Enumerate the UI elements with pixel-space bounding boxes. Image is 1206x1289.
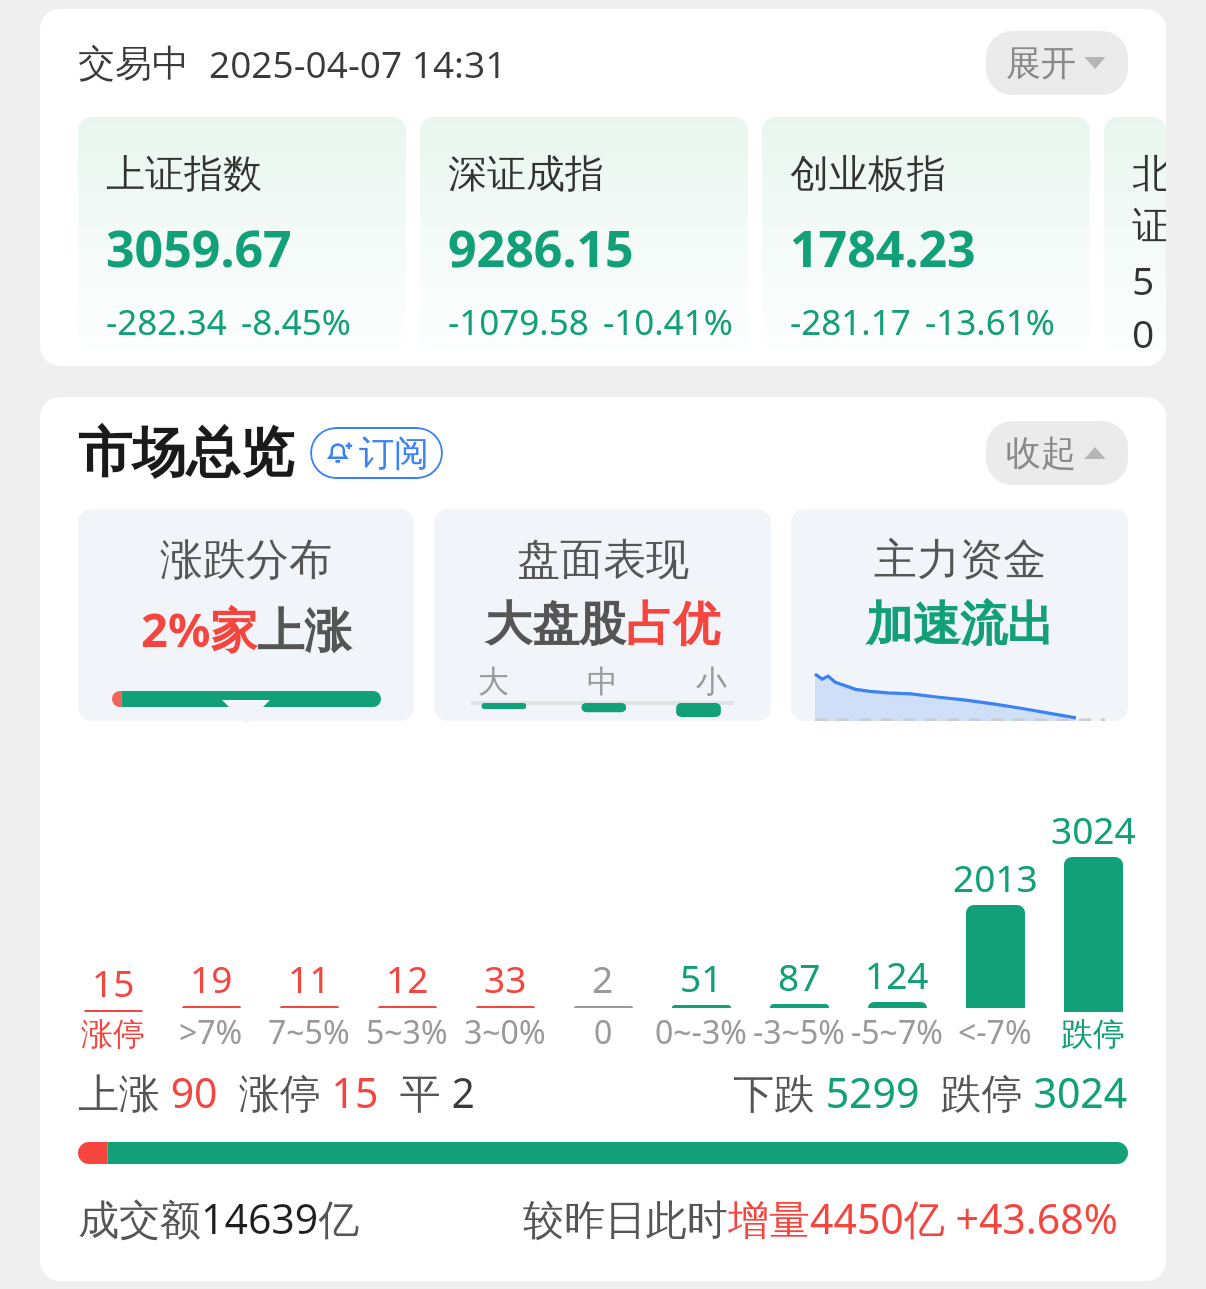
staticText: 市场总览	[78, 419, 294, 487]
staticText: -3~5%	[753, 1010, 845, 1054]
staticText: 51	[680, 952, 723, 1002]
staticText: 5~3%	[366, 1010, 448, 1054]
staticText: -8.45%	[241, 298, 351, 346]
staticText: 19	[190, 953, 233, 1003]
staticText: 大	[478, 662, 509, 701]
button[interactable]: 主力资金	[791, 509, 1128, 721]
staticText: 涨跌分布	[160, 533, 332, 587]
staticText: 中	[587, 662, 618, 701]
staticText: 盘面表现	[517, 533, 689, 587]
staticText: 15	[92, 957, 135, 1007]
staticText: 1784.23	[790, 214, 976, 282]
staticText: 深证成指	[448, 149, 604, 198]
button[interactable]: 收起	[986, 421, 1128, 485]
button[interactable]: 上证指数	[78, 117, 406, 349]
staticText: -281.17	[790, 298, 911, 346]
button[interactable]: 订阅	[310, 427, 443, 479]
button[interactable]: 盘面表现	[434, 509, 771, 721]
staticText: <-7%	[958, 1010, 1032, 1054]
staticText: 上证指数	[106, 149, 262, 198]
staticText: 展开	[1006, 41, 1076, 85]
staticText: -282.34	[106, 298, 227, 346]
staticText: 大盘股占优	[485, 595, 720, 654]
staticText: 33	[484, 953, 527, 1003]
staticText: 3059.67	[106, 214, 292, 282]
staticText: 跌停	[1061, 1014, 1125, 1054]
staticText: 3~0%	[464, 1010, 546, 1054]
staticText: 7~5%	[268, 1010, 350, 1054]
staticText: -5~7%	[851, 1010, 943, 1054]
staticText: 上涨 90 涨停 15 平 2	[78, 1064, 475, 1120]
button[interactable]: 展开	[986, 31, 1128, 95]
staticText: -13.61%	[925, 298, 1055, 346]
staticText: 2025-04-07 14:31	[209, 38, 507, 88]
staticText: 创业板指	[790, 149, 946, 198]
staticText: 0~-3%	[655, 1010, 747, 1054]
staticText: 成交额14639亿	[78, 1190, 360, 1246]
button[interactable]: 创业板指	[762, 117, 1090, 349]
staticText: 交易中	[78, 40, 189, 87]
staticText: 北证50	[1132, 149, 1166, 349]
staticText: 87	[778, 951, 821, 1001]
button[interactable]: 北证50	[1104, 117, 1166, 349]
staticText: 11	[288, 953, 331, 1003]
staticText: 收起	[1006, 431, 1076, 475]
staticText: 加速流出	[866, 595, 1054, 654]
staticText: 涨停	[81, 1014, 145, 1054]
staticText: 2013	[953, 852, 1038, 902]
staticText: >7%	[179, 1010, 243, 1054]
staticText: 3024	[1051, 804, 1136, 854]
staticText: -1079.58	[448, 298, 589, 346]
staticText: 0	[594, 1010, 613, 1054]
staticText: 2%家上涨	[141, 597, 352, 661]
staticText: 下跌 5299 跌停 3024	[733, 1064, 1128, 1120]
button[interactable]: 涨跌分布	[78, 509, 414, 724]
staticText: 订阅	[359, 431, 429, 475]
staticText: 小	[696, 662, 727, 701]
staticText: 2	[592, 953, 614, 1003]
staticText: 较昨日此时增量4450亿 +43.68%	[523, 1190, 1118, 1246]
staticText: -10.41%	[603, 298, 733, 346]
staticText: 12	[386, 953, 429, 1003]
button[interactable]: 深证成指	[420, 117, 748, 349]
staticText: 124	[865, 949, 929, 999]
staticText: 主力资金	[874, 533, 1046, 587]
staticText: 9286.15	[448, 214, 634, 282]
